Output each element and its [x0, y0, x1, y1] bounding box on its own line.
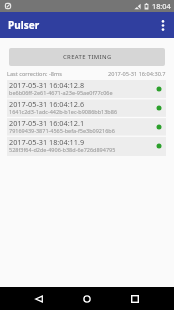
staticText: 2017-05-31 16:04:12.6	[9, 99, 85, 109]
staticText: Pulser	[8, 18, 40, 32]
staticText: be6b06ff-2e61-4671-a23e-95ae0f77c06e	[9, 89, 113, 96]
button[interactable]: Recents	[125, 287, 145, 310]
button[interactable]: 2017-05-31 18:04:11.9	[7, 137, 166, 156]
button[interactable]: 2017-05-31 16:04:12.8	[7, 80, 166, 99]
button[interactable]: CREATE TIMING	[9, 48, 165, 66]
staticText: 1641c2d3-1adc-442b-b1ec-b9086bb13b86	[9, 108, 118, 115]
staticText: 79169439-3871-4565-befa-f5e3b09216b6	[9, 127, 115, 134]
staticText: 2017-05-31 16:04:30.7	[108, 70, 166, 78]
button[interactable]: More options	[152, 12, 174, 38]
staticText: 18:04	[152, 1, 171, 11]
staticText: 2017-05-31 16:04:12.1	[9, 118, 85, 128]
staticText: 2017-05-31 18:04:11.9	[9, 137, 85, 147]
staticText: 528f3f64-d2de-4906-b38d-6e726d894795	[9, 146, 116, 153]
staticText: 2017-05-31 16:04:12.8	[9, 80, 85, 90]
button[interactable]: Back	[29, 287, 49, 310]
staticText: CREATE TIMING	[63, 53, 112, 61]
staticText: Last correction: -8ms	[7, 70, 62, 78]
button[interactable]: 2017-05-31 16:04:12.1	[7, 118, 166, 137]
button[interactable]: 2017-05-31 16:04:12.6	[7, 99, 166, 118]
button[interactable]: Home	[77, 287, 97, 310]
